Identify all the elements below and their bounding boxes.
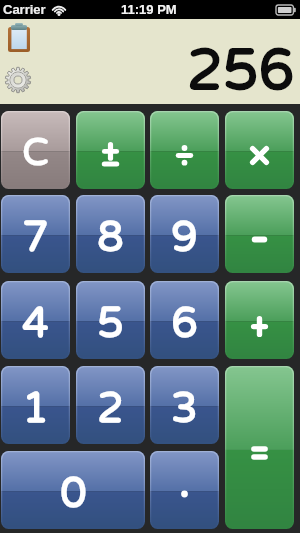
button[interactable]: Memory	[8, 23, 30, 52]
staticText: C	[22, 130, 49, 176]
button[interactable]: 5	[76, 281, 145, 359]
button[interactable]: Minus	[225, 195, 294, 273]
staticText: 3	[171, 383, 198, 434]
button[interactable]: Decimal point	[150, 451, 219, 529]
staticText: 2	[97, 383, 124, 434]
button[interactable]: Divide	[150, 111, 219, 189]
button[interactable]: 1	[1, 366, 70, 444]
staticText: 9	[171, 212, 198, 263]
staticText: 7	[22, 212, 49, 263]
button[interactable]: C	[1, 111, 70, 189]
button[interactable]: 6	[150, 281, 219, 359]
button[interactable]: Equals	[225, 366, 294, 529]
button[interactable]: 4	[1, 281, 70, 359]
staticText: 256	[187, 37, 295, 106]
staticText: 5	[97, 298, 124, 349]
button[interactable]: Plus minus	[76, 111, 145, 189]
staticText: Carrier	[3, 2, 46, 17]
button[interactable]: Multiply	[225, 111, 294, 189]
button[interactable]: 3	[150, 366, 219, 444]
staticText: 8	[97, 212, 124, 263]
button[interactable]: 2	[76, 366, 145, 444]
staticText: 6	[171, 298, 198, 349]
button[interactable]: 0	[1, 451, 145, 529]
staticText: 1	[22, 383, 49, 434]
staticText: 4	[22, 298, 49, 349]
staticText: 0	[60, 468, 87, 519]
button[interactable]: 9	[150, 195, 219, 273]
staticText: 11:19 PM	[121, 2, 177, 17]
button[interactable]: 8	[76, 195, 145, 273]
button[interactable]: 7	[1, 195, 70, 273]
button[interactable]: Plus	[225, 281, 294, 359]
button[interactable]: Settings	[5, 67, 31, 93]
